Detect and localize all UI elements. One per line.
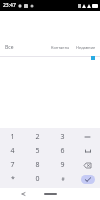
button[interactable]: 4	[0, 144, 25, 158]
button[interactable]: 8	[25, 158, 50, 172]
button[interactable]: 3	[50, 130, 75, 144]
button[interactable]: 9	[50, 158, 75, 172]
button[interactable]: Контакты	[48, 43, 73, 52]
button[interactable]: Backspace	[75, 158, 100, 172]
staticText: 8	[35, 160, 40, 170]
staticText: *	[11, 174, 15, 184]
button[interactable]: Home	[40, 189, 60, 199]
button[interactable]: *	[0, 172, 25, 186]
staticText: 4	[10, 146, 15, 156]
button[interactable]: 5	[25, 144, 50, 158]
button[interactable]: Enter	[75, 172, 100, 186]
staticText: Все	[5, 44, 14, 51]
button[interactable]: Space	[75, 144, 100, 158]
button[interactable]: #	[50, 172, 75, 186]
staticText: 2	[35, 132, 40, 142]
button[interactable]: 2	[25, 130, 50, 144]
staticText: 6	[60, 146, 65, 156]
button[interactable]: 0	[25, 172, 50, 186]
button[interactable]: 1	[0, 130, 25, 144]
staticText: 7	[10, 160, 15, 170]
button[interactable]: Back	[18, 189, 28, 199]
button[interactable]: Dash	[75, 130, 100, 144]
button[interactable]: 7	[0, 158, 25, 172]
button[interactable]: Недавние	[73, 43, 100, 52]
staticText: 3	[60, 132, 65, 142]
staticText: 9	[60, 160, 65, 170]
staticText: Недавние	[76, 45, 96, 50]
staticText: 23:47	[3, 2, 16, 9]
staticText: #	[61, 176, 65, 183]
button[interactable]: 6	[50, 144, 75, 158]
staticText: 1	[10, 132, 15, 142]
staticText: Контакты	[51, 45, 70, 50]
button[interactable]: Все	[0, 42, 18, 53]
staticText: 5	[35, 146, 40, 156]
staticText: 0	[35, 174, 40, 184]
